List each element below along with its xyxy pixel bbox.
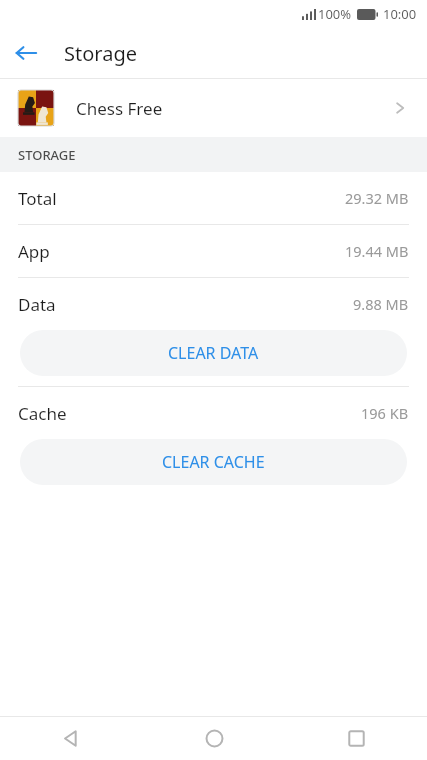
- staticText: 100%: [318, 5, 352, 23]
- staticText: Chess Free: [76, 97, 163, 120]
- button[interactable]: CLEAR CACHE: [20, 439, 407, 485]
- staticText: Total: [18, 187, 57, 210]
- button[interactable]: Cache: [0, 387, 427, 439]
- button[interactable]: Back: [0, 28, 52, 78]
- staticText: App: [18, 240, 50, 263]
- staticText: Data: [18, 293, 56, 316]
- button[interactable]: Recents: [285, 717, 427, 760]
- staticText: 196 KB: [361, 403, 409, 423]
- staticText: Cache: [18, 402, 67, 425]
- button[interactable]: Total: [0, 172, 427, 224]
- button[interactable]: CLEAR DATA: [20, 330, 407, 376]
- button[interactable]: App: [0, 225, 427, 277]
- staticText: STORAGE: [18, 146, 76, 164]
- button[interactable]: Back: [0, 717, 143, 760]
- staticText: CLEAR CACHE: [162, 451, 265, 473]
- staticText: 10:00: [383, 5, 417, 23]
- button[interactable]: Data: [0, 278, 427, 330]
- staticText: 9.88 MB: [353, 294, 409, 314]
- staticText: Storage: [64, 40, 137, 67]
- staticText: 29.32 MB: [345, 188, 409, 208]
- button[interactable]: Chess Free: [0, 79, 427, 137]
- staticText: 19.44 MB: [345, 241, 409, 261]
- button[interactable]: Home: [143, 717, 285, 760]
- staticText: CLEAR DATA: [168, 342, 259, 364]
